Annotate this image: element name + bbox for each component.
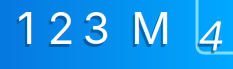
button[interactable]: 1 xyxy=(11,5,41,51)
staticText: M xyxy=(131,1,171,55)
staticText: 3 xyxy=(80,4,107,58)
staticText: 2 xyxy=(47,1,74,55)
button[interactable]: 4 xyxy=(196,13,226,59)
staticText: 2 xyxy=(45,4,72,58)
button[interactable]: M xyxy=(131,5,171,51)
staticText: 4 xyxy=(196,15,221,63)
staticText: 1 xyxy=(15,4,33,58)
staticText: 4 xyxy=(198,12,223,60)
button[interactable]: 2 xyxy=(46,5,76,51)
staticText: M xyxy=(129,4,169,58)
staticText: 1 xyxy=(17,1,35,55)
staticText: 3 xyxy=(82,1,109,55)
button[interactable]: 3 xyxy=(81,5,111,51)
